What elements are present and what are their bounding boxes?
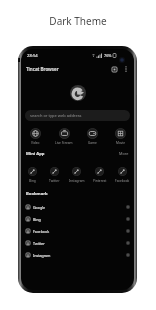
- button[interactable]: Twitter: [21, 237, 134, 249]
- staticText: Facebook: [33, 229, 50, 234]
- button[interactable]: More options: [121, 64, 131, 74]
- button[interactable]: Options for Bing: [125, 216, 131, 222]
- button[interactable]: Options for Google: [125, 204, 131, 210]
- staticText: More: [119, 151, 129, 156]
- button[interactable]: Instagram: [65, 166, 88, 184]
- staticText: 28:54: [27, 53, 38, 59]
- staticText: Mini App: [26, 151, 45, 157]
- button[interactable]: Movie: [106, 127, 134, 146]
- button[interactable]: Options for Twitter: [125, 240, 131, 246]
- staticText: Bookmark: [26, 191, 48, 197]
- staticText: Live Stream: [55, 141, 73, 145]
- button[interactable]: Facebook: [111, 166, 134, 184]
- staticText: Game: [88, 141, 97, 145]
- button[interactable]: Options for Instagram: [125, 252, 131, 258]
- button[interactable]: Live Stream: [50, 127, 78, 146]
- staticText: Movie: [116, 141, 125, 145]
- staticText: Tincat Browser: [26, 66, 59, 72]
- button[interactable]: search or type web address: [25, 110, 130, 121]
- button[interactable]: Pinterest: [88, 166, 111, 184]
- staticText: Instagram: [33, 253, 51, 258]
- staticText: Instagram: [69, 179, 85, 183]
- staticText: Video: [31, 141, 40, 145]
- button[interactable]: Instagram: [21, 249, 134, 261]
- button[interactable]: Tabs: [109, 64, 119, 74]
- button[interactable]: Bing: [21, 166, 43, 184]
- button[interactable]: Facebook: [21, 225, 134, 237]
- staticText: Twitter: [49, 179, 60, 183]
- staticText: Pinterest: [93, 179, 107, 183]
- staticText: Twitter: [33, 241, 45, 246]
- button[interactable]: Game: [78, 127, 106, 146]
- button[interactable]: Video: [21, 127, 50, 146]
- staticText: search or type web address: [30, 113, 82, 118]
- staticText: Facebook: [115, 179, 130, 183]
- staticText: Dark Theme: [0, 14, 156, 28]
- staticText: Bing: [29, 179, 36, 183]
- button[interactable]: More: [119, 151, 129, 156]
- staticText: Google: [33, 205, 46, 210]
- staticText: Bing: [33, 217, 41, 222]
- staticText: 76%: [104, 53, 112, 58]
- button[interactable]: Google: [21, 201, 134, 213]
- button[interactable]: Options for Facebook: [125, 228, 131, 234]
- button[interactable]: Twitter: [43, 166, 65, 184]
- button[interactable]: Bing: [21, 213, 134, 225]
